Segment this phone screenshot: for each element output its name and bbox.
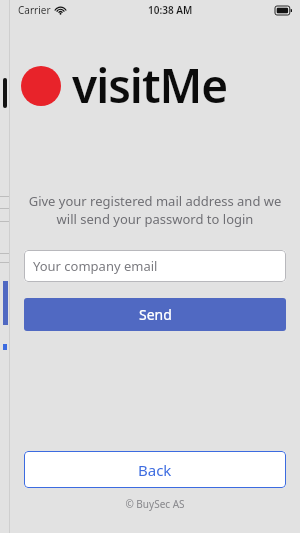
staticText: Back [138, 460, 172, 480]
staticText: © BuySec AS [10, 497, 300, 511]
staticText: Send [139, 305, 172, 324]
button[interactable]: Your company email [24, 250, 286, 282]
other: Wi-Fi signal [55, 5, 66, 16]
staticText: 10:38 AM [148, 3, 193, 17]
staticText: Carrier [18, 3, 51, 17]
staticText: Give your registered mail address and we… [24, 192, 286, 228]
button[interactable]: Send [24, 298, 286, 331]
other: Battery full [275, 6, 292, 15]
staticText: Your company email [33, 257, 158, 275]
button[interactable]: Back [24, 451, 286, 488]
staticText: visitMe [72, 54, 228, 117]
